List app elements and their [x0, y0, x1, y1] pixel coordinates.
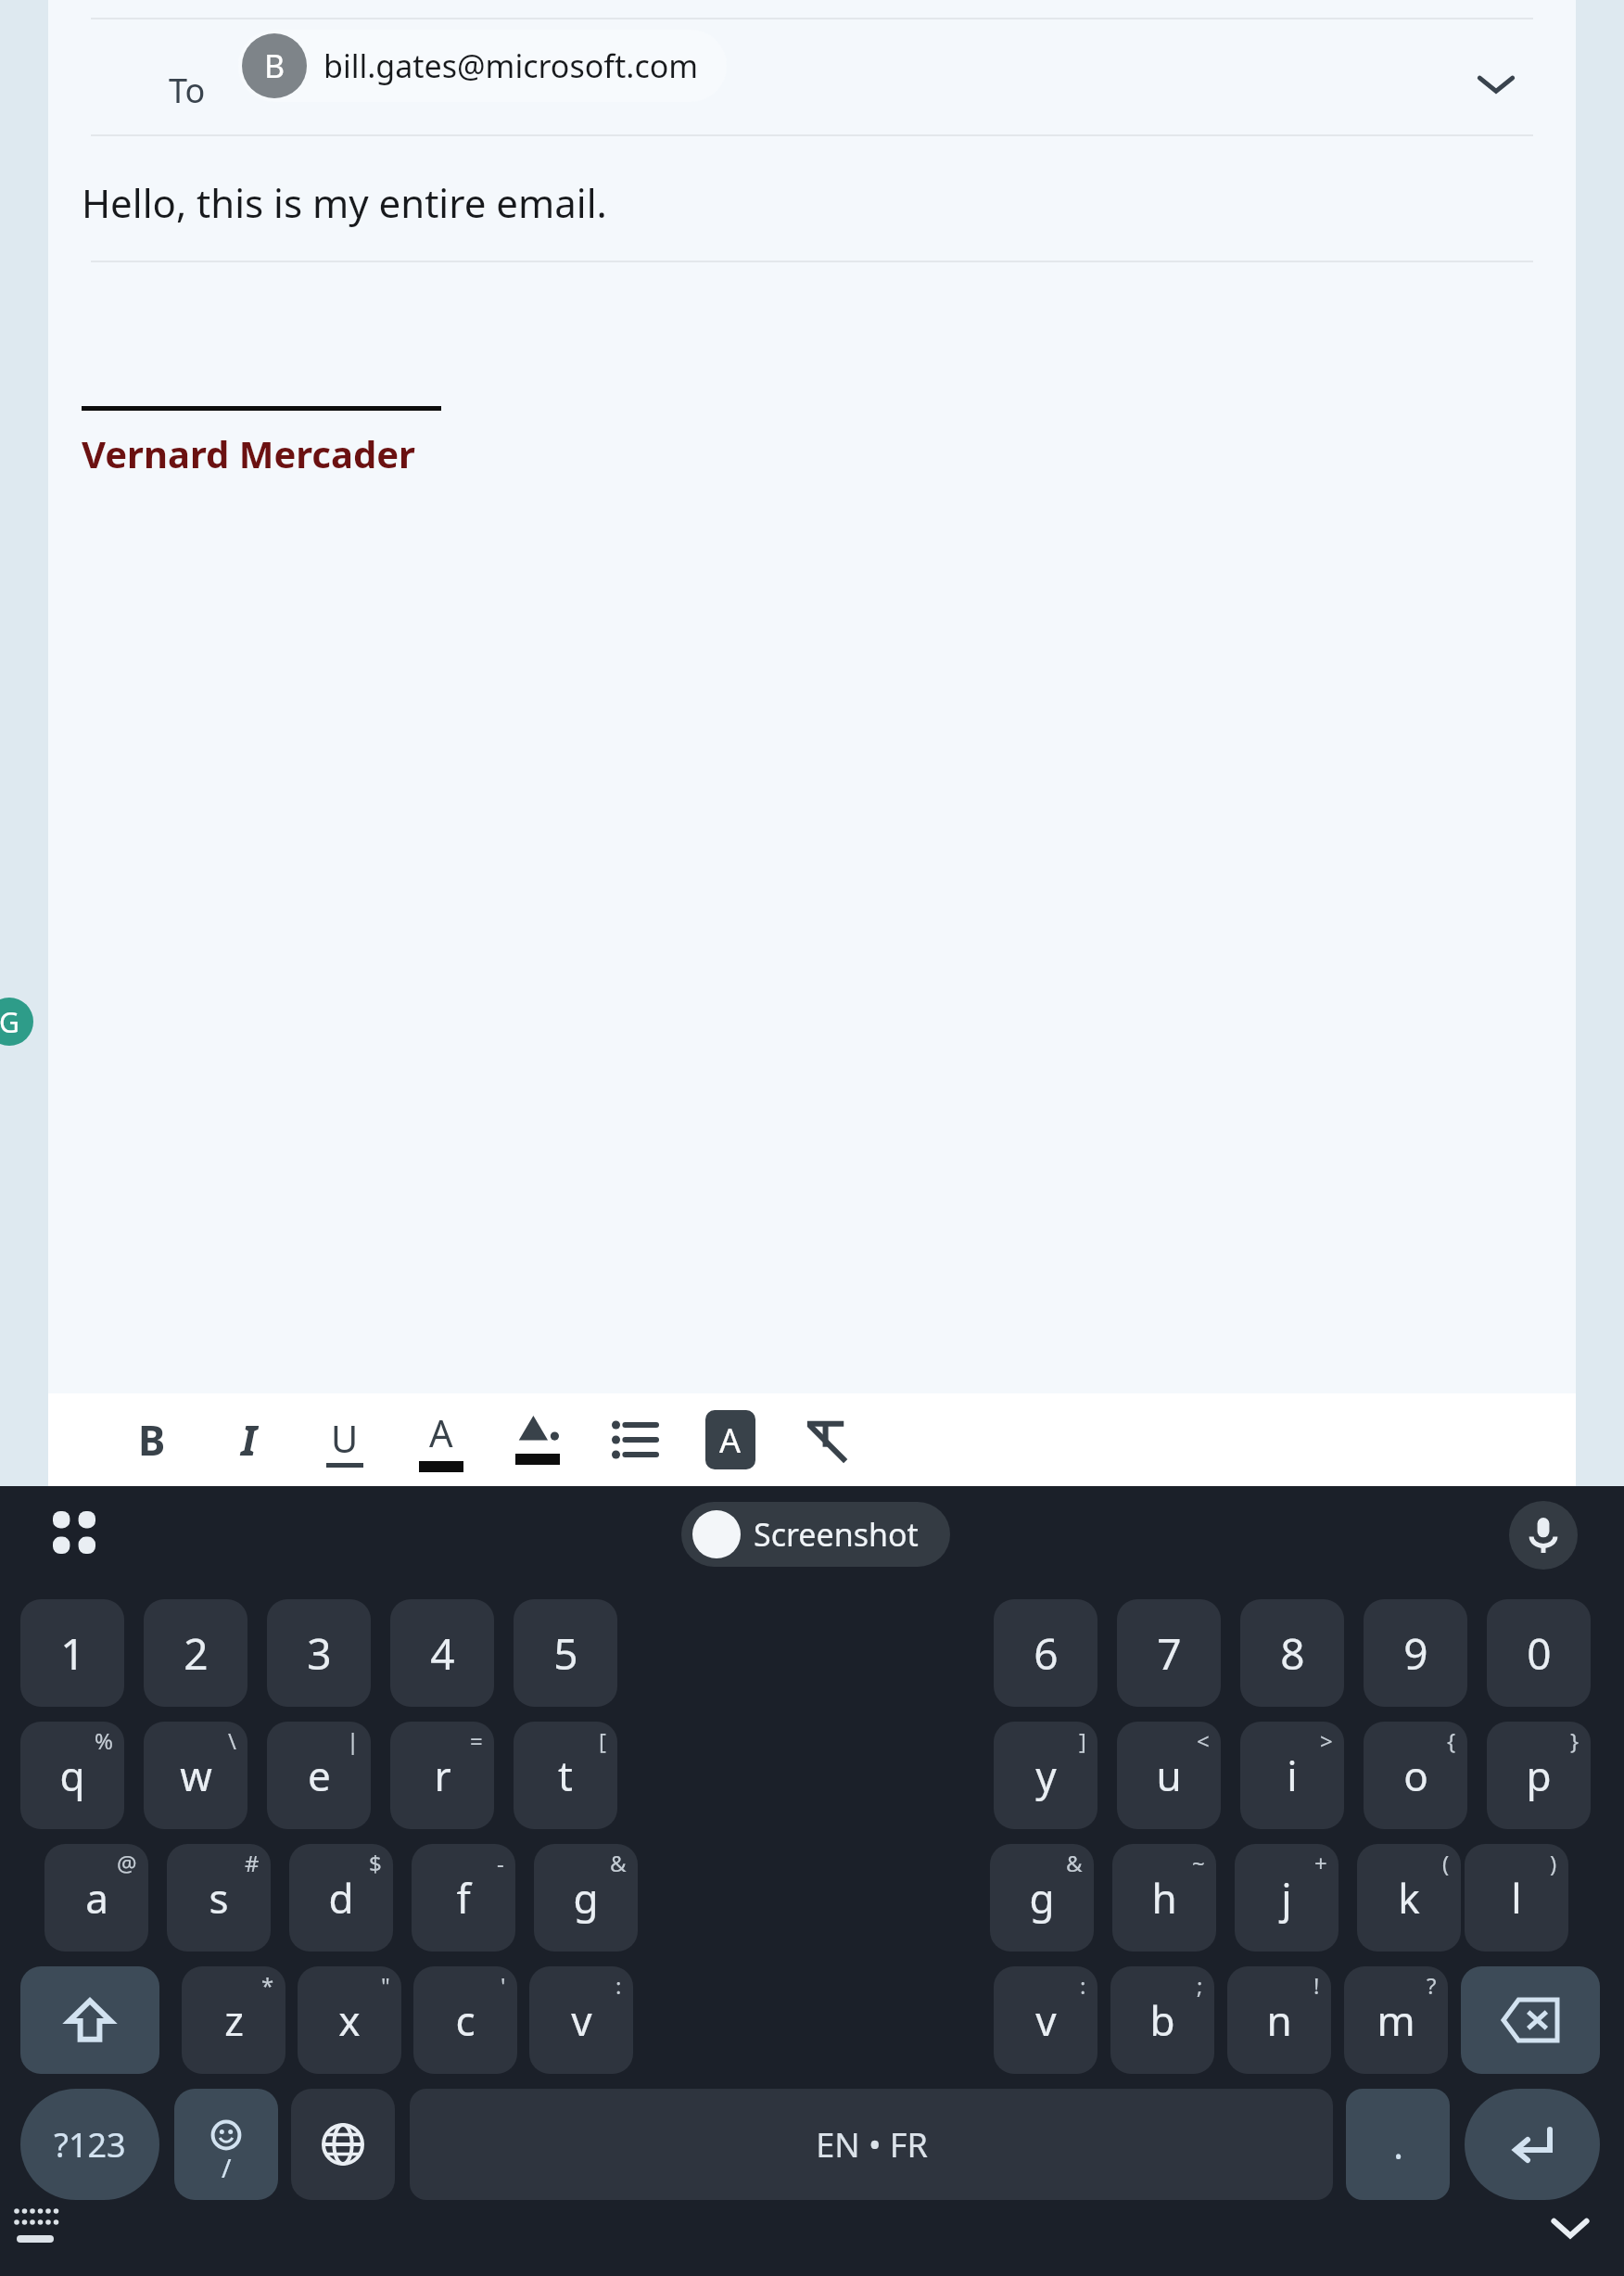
- button[interactable]: 1: [20, 1599, 124, 1707]
- staticText: 4: [430, 1624, 455, 1683]
- button[interactable]: 7: [1117, 1599, 1221, 1707]
- staticText: 0: [1527, 1624, 1552, 1683]
- button[interactable]: v: [994, 1966, 1097, 2074]
- staticText: g: [573, 1870, 599, 1926]
- staticText: G: [0, 1003, 19, 1041]
- button[interactable]: Voice input: [1509, 1501, 1578, 1570]
- button[interactable]: t: [514, 1722, 617, 1829]
- button[interactable]: y: [994, 1722, 1097, 1829]
- button[interactable]: a: [44, 1844, 148, 1952]
- button[interactable]: 8: [1240, 1599, 1344, 1707]
- staticText: g: [1029, 1870, 1055, 1926]
- button[interactable]: Bold: [104, 1393, 200, 1486]
- button[interactable]: w: [144, 1722, 247, 1829]
- button[interactable]: Keyboard toolbar: [48, 1507, 100, 1558]
- button[interactable]: m: [1344, 1966, 1448, 2074]
- button[interactable]: z: [182, 1966, 285, 2074]
- staticText: ~: [1192, 1848, 1205, 1878]
- staticText: -: [497, 1848, 504, 1878]
- button[interactable]: Clear formatting: [779, 1393, 875, 1486]
- button[interactable]: Screenshot: [681, 1502, 950, 1567]
- staticText: v: [1035, 1992, 1057, 2048]
- staticText: q: [59, 1748, 85, 1803]
- button[interactable]: Hide keyboard: [1544, 2200, 1596, 2252]
- staticText: 5: [553, 1624, 578, 1683]
- button[interactable]: p: [1487, 1722, 1591, 1829]
- button[interactable]: k: [1357, 1844, 1461, 1952]
- staticText: $: [369, 1848, 382, 1878]
- button[interactable]: ?123: [20, 2089, 159, 2200]
- staticText: >: [1320, 1725, 1333, 1756]
- button[interactable]: Show more recipients: [1457, 45, 1535, 122]
- button[interactable]: 6: [994, 1599, 1097, 1707]
- button[interactable]: i: [1240, 1722, 1344, 1829]
- button[interactable]: h: [1112, 1844, 1216, 1952]
- button[interactable]: n: [1227, 1966, 1331, 2074]
- button[interactable]: x: [298, 1966, 401, 2074]
- button[interactable]: j: [1235, 1844, 1339, 1952]
- staticText: ]: [1079, 1725, 1086, 1756]
- button[interactable]: b: [1110, 1966, 1214, 2074]
- button[interactable]: q: [20, 1722, 124, 1829]
- button[interactable]: Paragraph style: [682, 1393, 779, 1486]
- staticText: Vernard Mercader: [82, 428, 415, 478]
- button[interactable]: Shift: [20, 1966, 159, 2074]
- button[interactable]: g: [990, 1844, 1094, 1952]
- staticText: c: [455, 1992, 476, 2048]
- staticText: To: [169, 68, 206, 113]
- button[interactable]: Emoji: [174, 2089, 278, 2200]
- staticText: 2: [184, 1624, 209, 1683]
- staticText: n: [1266, 1992, 1292, 2048]
- button[interactable]: c: [413, 1966, 517, 2074]
- button[interactable]: 3: [267, 1599, 371, 1707]
- button[interactable]: Underline: [297, 1393, 393, 1486]
- staticText: EN • FR: [816, 2122, 928, 2168]
- button[interactable]: Enter: [1465, 2089, 1600, 2200]
- staticText: +: [1314, 1848, 1327, 1878]
- button[interactable]: 4: [390, 1599, 494, 1707]
- button[interactable]: Italic: [200, 1393, 297, 1486]
- staticText: f: [456, 1870, 471, 1926]
- button[interactable]: Bulleted list: [586, 1393, 682, 1486]
- button[interactable]: s: [167, 1844, 271, 1952]
- staticText: U: [331, 1413, 359, 1463]
- button[interactable]: r: [390, 1722, 494, 1829]
- staticText: a: [85, 1870, 108, 1926]
- button[interactable]: f: [412, 1844, 515, 1952]
- staticText: 9: [1403, 1624, 1428, 1683]
- button[interactable]: o: [1364, 1722, 1467, 1829]
- button[interactable]: 9: [1364, 1599, 1467, 1707]
- button[interactable]: Grammarly: [0, 998, 33, 1046]
- button[interactable]: .: [1346, 2089, 1450, 2200]
- staticText: /: [222, 2150, 232, 2185]
- staticText: Screenshot: [754, 1513, 919, 1556]
- button[interactable]: l: [1465, 1844, 1568, 1952]
- staticText: j: [1281, 1870, 1292, 1926]
- button[interactable]: Text colour: [393, 1393, 489, 1486]
- staticText: t: [558, 1748, 573, 1803]
- button[interactable]: 0: [1487, 1599, 1591, 1707]
- button[interactable]: B: [238, 30, 727, 102]
- button[interactable]: Keyboard layout: [13, 2207, 57, 2244]
- button[interactable]: Switch language: [291, 2089, 395, 2200]
- staticText: #: [245, 1848, 260, 1878]
- button[interactable]: g: [534, 1844, 638, 1952]
- button[interactable]: u: [1117, 1722, 1221, 1829]
- staticText: (: [1442, 1848, 1450, 1878]
- button[interactable]: 2: [144, 1599, 247, 1707]
- button[interactable]: e: [267, 1722, 371, 1829]
- staticText: ): [1550, 1848, 1557, 1878]
- staticText: :: [615, 1970, 622, 2001]
- staticText: \: [228, 1725, 236, 1756]
- button[interactable]: Backspace: [1461, 1966, 1600, 2074]
- button[interactable]: Space: [410, 2089, 1333, 2200]
- staticText: @: [117, 1848, 137, 1878]
- staticText: [: [599, 1725, 606, 1756]
- staticText: }: [1570, 1725, 1580, 1756]
- button[interactable]: 5: [514, 1599, 617, 1707]
- staticText: x: [338, 1992, 361, 2048]
- staticText: |: [347, 1725, 360, 1756]
- button[interactable]: d: [289, 1844, 393, 1952]
- button[interactable]: Highlight colour: [489, 1393, 586, 1486]
- button[interactable]: v: [529, 1966, 633, 2074]
